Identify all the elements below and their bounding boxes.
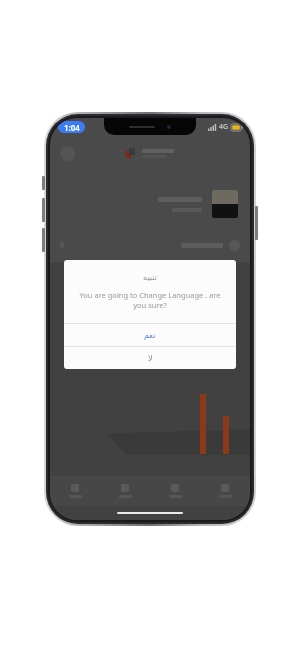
button[interactable]: Profile [60,146,75,161]
button[interactable]: لا [64,347,236,369]
staticText: 1:04 [64,122,80,133]
button[interactable] [200,476,250,506]
button[interactable] [100,476,150,506]
staticText: You are going to Change Language . are y… [74,290,226,310]
button[interactable] [150,476,200,506]
button[interactable] [60,234,240,256]
staticText: لا [148,354,153,363]
staticText: 4G [219,122,229,132]
staticText: نعم [144,331,156,340]
button[interactable] [62,182,238,226]
button[interactable] [50,476,100,506]
staticText: تنبيه [143,273,157,282]
button[interactable]: نعم [64,324,236,346]
